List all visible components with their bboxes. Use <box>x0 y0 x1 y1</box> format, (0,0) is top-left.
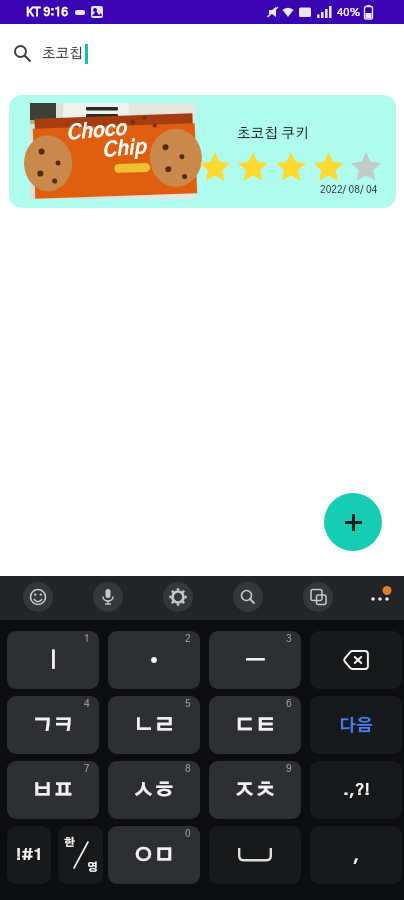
staticText: 0 <box>185 829 191 839</box>
staticText: 초코칩 쿠키 <box>237 127 309 141</box>
button[interactable]: ㄴㄹ <box>108 696 200 754</box>
staticText: ㄷㅌ <box>234 715 276 736</box>
button[interactable]: , <box>310 826 402 884</box>
staticText: ㄴㄹ <box>133 715 175 736</box>
staticText: .,?! <box>343 782 370 798</box>
button[interactable]: ㄱㅋ <box>7 696 99 754</box>
staticText: 2 <box>185 634 191 644</box>
staticText: 9 <box>286 764 292 774</box>
staticText: 40% <box>337 7 361 18</box>
staticText: 7 <box>84 764 90 774</box>
staticText: 초코칩 <box>42 47 83 61</box>
staticText: ㅣ <box>43 650 64 671</box>
button[interactable]: 2 <box>108 631 200 689</box>
staticText: 3 <box>286 634 292 644</box>
button[interactable] <box>310 631 402 689</box>
button[interactable] <box>161 576 242 620</box>
button[interactable] <box>242 576 323 620</box>
staticText: 6 <box>286 699 292 709</box>
button[interactable] <box>80 576 161 620</box>
staticText: ㅡ <box>245 650 266 671</box>
button[interactable] <box>323 576 404 620</box>
staticText: 2022/ 08/ 04 <box>320 185 378 195</box>
staticText: ㄱㅋ <box>32 715 74 736</box>
staticText: ㅇㅁ <box>133 845 175 866</box>
button[interactable]: Choco <box>9 95 396 208</box>
button[interactable]: ㄷㅌ <box>209 696 301 754</box>
button[interactable] <box>324 493 382 551</box>
staticText: 4 <box>84 699 90 709</box>
staticText: ㅂㅍ <box>32 780 74 801</box>
staticText: , <box>353 847 360 864</box>
button[interactable]: ㅅㅎ <box>108 761 200 819</box>
staticText: KT 9:16 <box>26 6 69 18</box>
button[interactable]: ㅣ <box>7 631 99 689</box>
button[interactable]: ㅂㅍ <box>7 761 99 819</box>
button[interactable]: 초코칩 <box>0 24 404 83</box>
staticText: 한 <box>64 837 75 848</box>
button[interactable]: ㅈㅊ <box>209 761 301 819</box>
staticText: Choco <box>65 118 128 144</box>
staticText: 다음 <box>339 717 373 734</box>
staticText: Chip <box>101 137 147 161</box>
button[interactable]: ㅇㅁ <box>108 826 200 884</box>
button[interactable] <box>0 576 80 620</box>
button[interactable]: 다음 <box>310 696 402 754</box>
staticText: ㅈㅊ <box>234 780 276 801</box>
staticText: 5 <box>185 699 191 709</box>
button[interactable]: 한 <box>58 826 103 884</box>
staticText: 1 <box>84 634 90 644</box>
staticText: !#1 <box>16 847 43 863</box>
button[interactable]: !#1 <box>7 826 51 884</box>
staticText: 영 <box>87 862 98 873</box>
staticText: 8 <box>185 764 191 774</box>
staticText: ㅅㅎ <box>133 780 175 801</box>
button[interactable]: .,?! <box>310 761 402 819</box>
button[interactable]: ㅡ <box>209 631 301 689</box>
button[interactable] <box>209 826 301 884</box>
